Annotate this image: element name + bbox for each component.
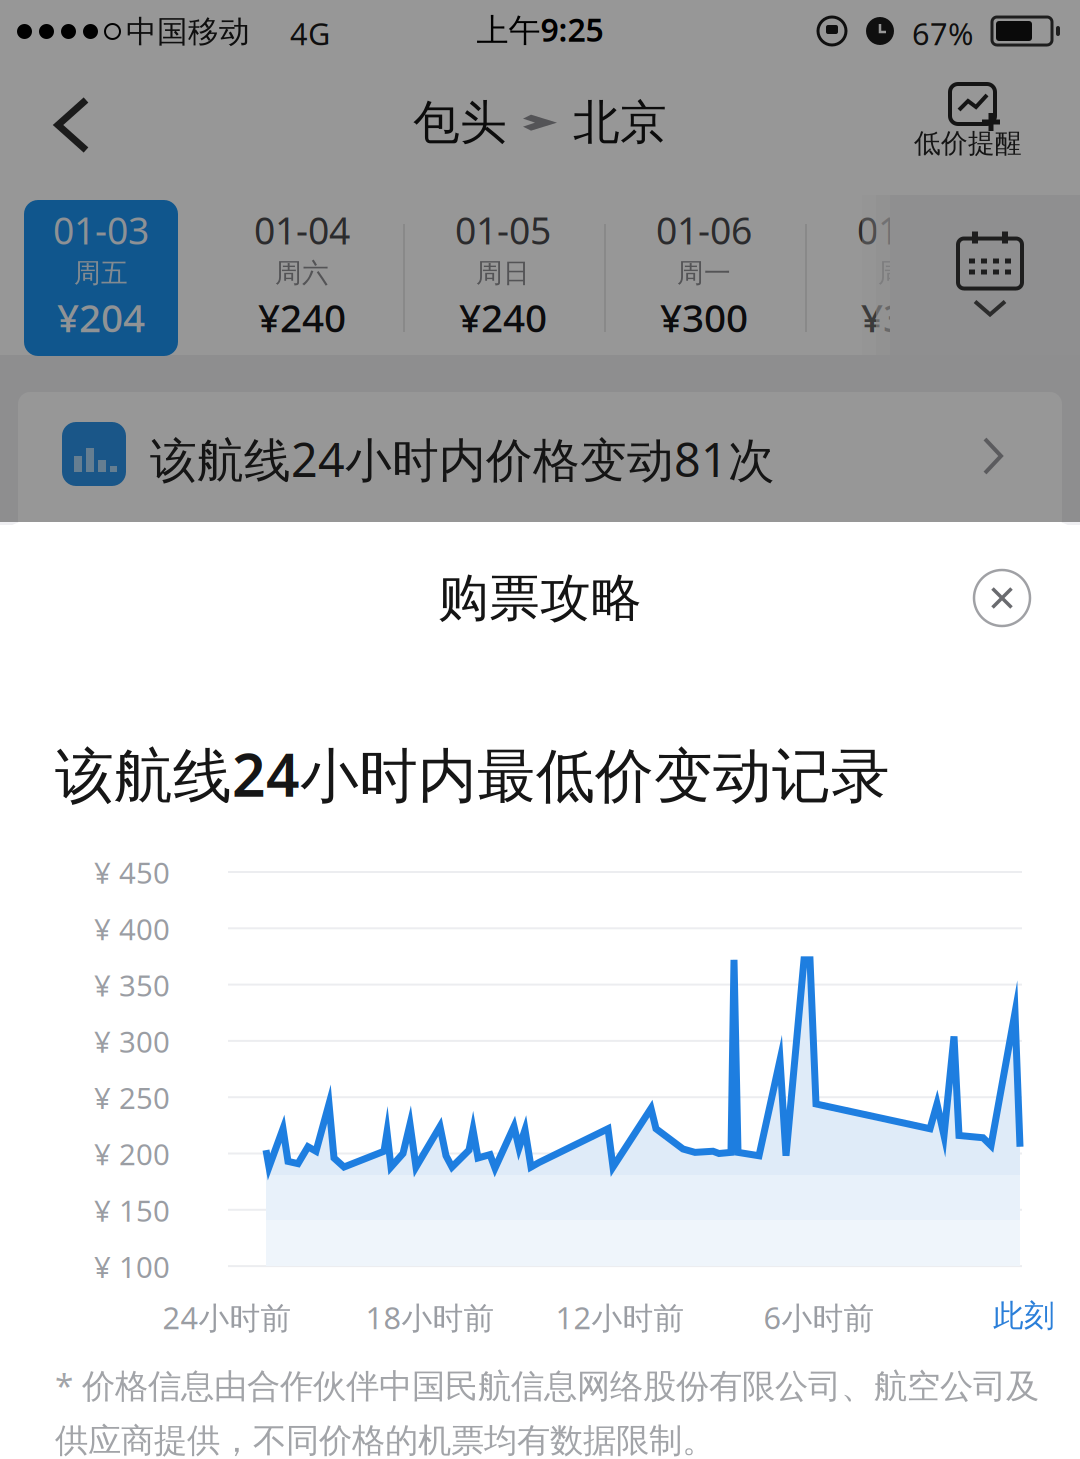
button[interactable]: 低价提醒 [888, 80, 1048, 166]
staticText: 24小时前 [162, 1297, 291, 1338]
staticText: ¥ 200 [94, 1134, 170, 1173]
button[interactable]: 该航线24小时内价格变动81次 [18, 392, 1062, 532]
staticText: 北京 [573, 94, 667, 151]
staticText: 周五 [74, 257, 128, 289]
staticText: ¥ 150 [94, 1191, 170, 1230]
staticText: 01-03 [53, 205, 149, 255]
staticText: 18小时前 [365, 1297, 494, 1338]
staticText: 4G [290, 13, 330, 54]
staticText: 该航线24小时内最低价变动记录 [55, 735, 890, 813]
staticText: * 价格信息由合作伙伴中国民航信息网络股份有限公司、航空公司及 [55, 1363, 1039, 1407]
button[interactable]: 01-04 [207, 194, 397, 354]
staticText: ¥240 [258, 291, 346, 343]
staticText: 中国移动 [126, 13, 250, 51]
staticText: 供应商提供，不同价格的机票均有数据限制。 [55, 1420, 715, 1459]
button[interactable]: 01-05 [408, 194, 598, 354]
staticText: 周一 [677, 257, 731, 289]
staticText: 12小时前 [555, 1297, 684, 1338]
staticText: ¥ 250 [94, 1078, 170, 1117]
staticText: 周二 [878, 257, 932, 289]
staticText: 此刻 [993, 1297, 1055, 1335]
staticText: 该航线24小时内价格变动81次 [150, 428, 775, 490]
staticText: 周六 [275, 257, 329, 289]
button[interactable]: 选择日期 [915, 195, 1065, 353]
staticText: 低价提醒 [914, 127, 1022, 160]
staticText: ¥ 300 [94, 1022, 170, 1061]
button[interactable]: Back [48, 92, 98, 160]
staticText: ¥204 [57, 291, 145, 343]
staticText: 6小时前 [763, 1297, 874, 1338]
staticText: ¥300 [660, 291, 748, 343]
staticText: ¥ 350 [94, 966, 170, 1005]
staticText: 购票攻略 [438, 567, 642, 629]
staticText: 包头 [413, 94, 507, 151]
staticText: 67% [912, 13, 973, 54]
button[interactable]: 01-06 [609, 194, 799, 354]
staticText: 01-06 [656, 205, 752, 255]
staticText: ¥ 400 [94, 909, 170, 948]
button[interactable]: 关闭 [974, 570, 1030, 626]
staticText: ¥ 100 [94, 1247, 170, 1286]
staticText: 01-05 [455, 205, 551, 255]
staticText: 周日 [476, 257, 530, 289]
staticText: ¥240 [459, 291, 547, 343]
staticText: 上午9:25 [476, 8, 603, 50]
staticText: ¥ 450 [94, 853, 170, 892]
button[interactable]: 01-03 [6, 194, 196, 354]
staticText: 01-04 [254, 205, 350, 255]
staticText: ¥300 [861, 291, 949, 343]
staticText: 01-07 [857, 205, 953, 255]
button[interactable]: 01-07 [810, 194, 1000, 354]
